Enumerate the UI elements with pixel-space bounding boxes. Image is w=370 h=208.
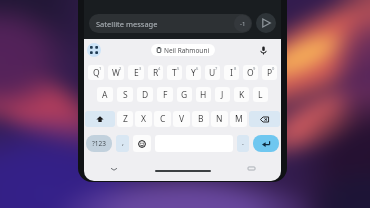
staticText: F bbox=[163, 89, 168, 101]
button[interactable]: P bbox=[262, 65, 277, 80]
staticText: I bbox=[230, 67, 233, 79]
button[interactable]: Switch keyboard bbox=[246, 163, 257, 174]
button[interactable]: Shift bbox=[85, 111, 115, 127]
staticText: 4 bbox=[158, 66, 161, 71]
button[interactable]: Keyboard switcher bbox=[87, 43, 101, 57]
button[interactable]: W bbox=[108, 65, 124, 80]
staticText: G bbox=[181, 89, 188, 101]
staticText: 0 bbox=[272, 66, 275, 71]
button[interactable]: T bbox=[167, 65, 182, 80]
staticText: O bbox=[247, 67, 254, 79]
staticText: U bbox=[209, 67, 216, 79]
staticText: 7 bbox=[215, 66, 218, 71]
staticText: W bbox=[112, 67, 120, 79]
button[interactable]: Backspace bbox=[249, 111, 280, 127]
button[interactable]: C bbox=[154, 111, 171, 127]
staticText: -1 bbox=[240, 20, 246, 28]
staticText: 8 bbox=[234, 66, 237, 71]
button[interactable]: N bbox=[211, 111, 228, 127]
staticText: 9 bbox=[253, 66, 256, 71]
staticText: Y bbox=[191, 67, 196, 79]
staticText: N bbox=[216, 113, 223, 125]
staticText: Neil Rahmouni bbox=[164, 46, 210, 55]
button[interactable]: O bbox=[243, 65, 258, 80]
button[interactable]: H bbox=[196, 87, 211, 102]
button[interactable]: Z bbox=[117, 111, 133, 127]
staticText: R bbox=[153, 67, 159, 79]
button[interactable]: K bbox=[234, 87, 249, 102]
staticText: . bbox=[242, 138, 244, 148]
button[interactable]: S bbox=[117, 87, 133, 102]
staticText: T bbox=[172, 67, 177, 79]
button[interactable]: Emoji bbox=[133, 135, 151, 152]
staticText: L bbox=[258, 89, 263, 101]
staticText: A bbox=[102, 89, 108, 101]
button[interactable]: B bbox=[192, 111, 209, 127]
staticText: B bbox=[198, 113, 204, 125]
staticText: H bbox=[200, 89, 207, 101]
button[interactable]: Q bbox=[88, 65, 104, 80]
staticText: 2 bbox=[119, 66, 122, 71]
button[interactable]: U bbox=[205, 65, 220, 80]
staticText: E bbox=[134, 67, 139, 79]
button[interactable]: , bbox=[116, 135, 129, 152]
button[interactable]: . bbox=[237, 135, 249, 152]
staticText: S bbox=[123, 89, 128, 101]
button[interactable]: L bbox=[253, 87, 268, 102]
staticText: D bbox=[142, 89, 149, 101]
staticText: P bbox=[267, 67, 273, 79]
button[interactable]: D bbox=[137, 87, 153, 102]
staticText: ?123 bbox=[92, 139, 106, 148]
staticText: V bbox=[179, 113, 185, 125]
button[interactable]: Satellite message bbox=[89, 14, 252, 33]
button[interactable]: ?123 bbox=[86, 135, 112, 152]
staticText: 3 bbox=[139, 66, 142, 71]
staticText: 5 bbox=[177, 66, 180, 71]
button[interactable]: F bbox=[157, 87, 173, 102]
button[interactable]: E bbox=[128, 65, 144, 80]
staticText: , bbox=[122, 138, 124, 148]
button[interactable]: Enter bbox=[253, 135, 279, 152]
button[interactable]: Send bbox=[256, 13, 276, 33]
button[interactable]: X bbox=[135, 111, 152, 127]
button[interactable]: J bbox=[215, 87, 230, 102]
staticText: C bbox=[160, 113, 166, 125]
staticText: 1 bbox=[99, 66, 102, 71]
staticText: Satellite message bbox=[96, 19, 158, 29]
staticText: Z bbox=[123, 113, 128, 125]
button[interactable]: Neil Rahmouni bbox=[151, 44, 215, 56]
staticText: M bbox=[235, 113, 243, 125]
staticText: Q bbox=[93, 67, 100, 79]
staticText: X bbox=[141, 113, 146, 125]
staticText: 6 bbox=[196, 66, 199, 71]
button[interactable]: I bbox=[224, 65, 239, 80]
button[interactable]: G bbox=[177, 87, 192, 102]
button[interactable]: Hide keyboard bbox=[108, 163, 119, 174]
button[interactable]: V bbox=[173, 111, 190, 127]
button[interactable]: Y bbox=[186, 65, 201, 80]
staticText: K bbox=[239, 89, 245, 101]
button[interactable]: A bbox=[97, 87, 113, 102]
staticText: J bbox=[221, 89, 224, 101]
button[interactable]: Voice input bbox=[257, 44, 270, 57]
button[interactable]: M bbox=[230, 111, 247, 127]
button[interactable]: R bbox=[148, 65, 163, 80]
